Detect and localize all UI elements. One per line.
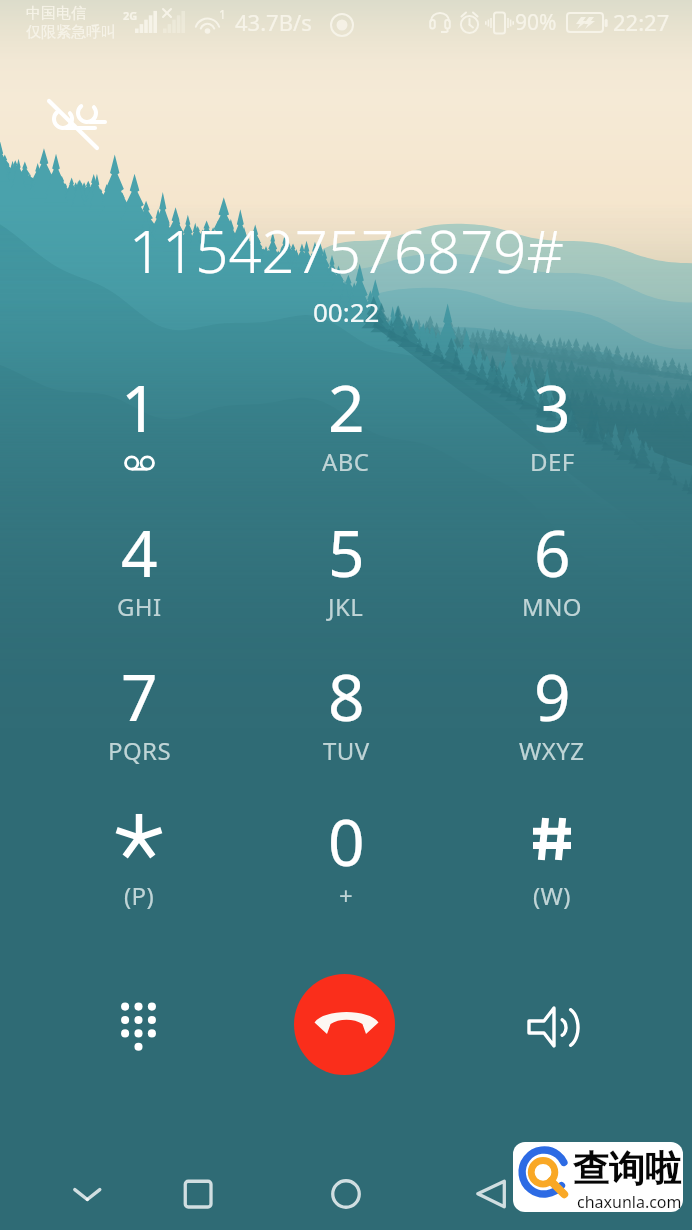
- staticText: TUV: [323, 734, 370, 767]
- staticText: MNO: [522, 590, 582, 623]
- button[interactable]: 1: [55, 362, 223, 488]
- button[interactable]: 3: [468, 362, 636, 488]
- button[interactable]: Hide keypad: [60, 1168, 112, 1220]
- button[interactable]: Call recording off: [42, 92, 114, 156]
- staticText: 2: [328, 364, 365, 451]
- button[interactable]: 0: [262, 796, 430, 922]
- staticText: PQRS: [108, 734, 171, 767]
- staticText: WXYZ: [519, 734, 585, 767]
- staticText: 2G: [123, 8, 138, 23]
- staticText: 43.7B/s: [235, 7, 312, 37]
- button[interactable]: 9: [468, 651, 636, 777]
- staticText: (P): [124, 879, 155, 912]
- staticText: 3: [534, 364, 571, 451]
- staticText: 115427576879#: [129, 211, 564, 290]
- staticText: 4: [121, 509, 158, 596]
- staticText: 仅限紧急呼叫: [26, 23, 116, 42]
- staticText: ABC: [322, 445, 370, 478]
- button[interactable]: Show keypad: [106, 980, 172, 1046]
- button[interactable]: 8: [262, 651, 430, 777]
- button[interactable]: 2: [262, 362, 430, 488]
- staticText: 9: [534, 653, 571, 740]
- staticText: 8: [328, 653, 365, 740]
- button[interactable]: Recent apps: [172, 1168, 224, 1220]
- staticText: JKL: [328, 590, 364, 623]
- staticText: 90%: [515, 8, 557, 37]
- staticText: 00:22: [313, 294, 380, 329]
- button[interactable]: End call: [294, 974, 395, 1075]
- staticText: 1: [219, 6, 226, 22]
- button[interactable]: 4: [55, 507, 223, 633]
- staticText: +: [339, 879, 354, 912]
- staticText: 5: [328, 509, 365, 596]
- button[interactable]: Home: [320, 1168, 372, 1220]
- button[interactable]: 5: [262, 507, 430, 633]
- staticText: 22:27: [613, 7, 670, 37]
- button[interactable]: Speaker: [522, 1000, 586, 1056]
- staticText: DEF: [530, 445, 575, 478]
- staticText: 查询啦: [573, 1146, 681, 1191]
- staticText: chaxunla.com: [577, 1191, 682, 1212]
- button[interactable]: 6: [468, 507, 636, 633]
- staticText: 7: [121, 653, 158, 740]
- button[interactable]: Back: [464, 1168, 516, 1220]
- button[interactable]: (P): [55, 796, 223, 922]
- staticText: GHI: [117, 590, 162, 623]
- staticText: 0: [328, 798, 365, 885]
- staticText: 中国电信: [26, 4, 86, 23]
- staticText: 1: [121, 364, 158, 451]
- staticText: (W): [533, 879, 571, 912]
- button[interactable]: 7: [55, 651, 223, 777]
- staticText: 6: [534, 509, 571, 596]
- button[interactable]: (W): [468, 796, 636, 922]
